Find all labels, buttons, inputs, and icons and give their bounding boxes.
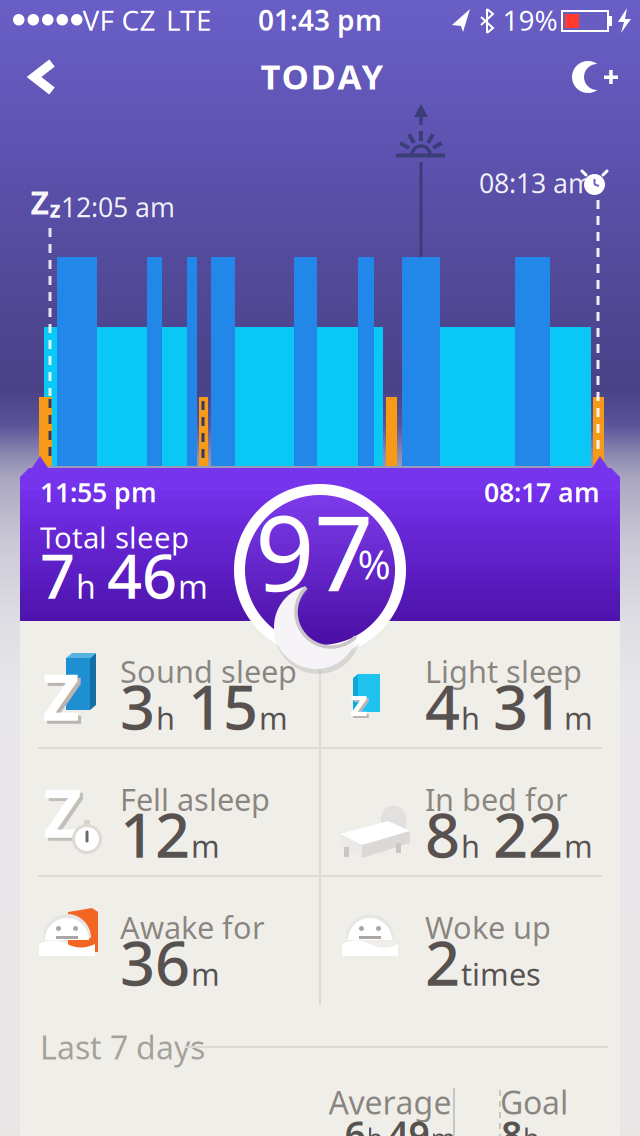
staticText: Fell asleep [120, 779, 270, 819]
staticText: VF CZ [82, 1, 155, 39]
button[interactable]: Add sleep [566, 55, 622, 99]
staticText: m [259, 697, 288, 738]
staticText: 31 [493, 665, 563, 747]
staticText: 11:55 pm [40, 474, 157, 510]
staticText: z [352, 680, 370, 728]
staticText: 08:13 am [479, 165, 593, 201]
staticText: Goal [500, 1081, 568, 1123]
staticText: Average [328, 1081, 451, 1123]
staticText: h [156, 697, 175, 738]
staticText: 49 [387, 1109, 429, 1136]
staticText: times [461, 953, 541, 994]
staticText: 8 [425, 793, 460, 875]
staticText: 19% [502, 1, 557, 39]
staticText: z [49, 194, 60, 224]
staticText: h [461, 825, 480, 866]
staticText: 2 [425, 921, 460, 1003]
staticText: Z [42, 653, 79, 738]
staticText: 22 [493, 793, 563, 875]
staticText: 97 [255, 482, 373, 620]
staticText: 46 [107, 534, 177, 616]
staticText: m [564, 697, 593, 738]
staticText: In bed for [425, 779, 568, 819]
staticText: Z [30, 181, 49, 223]
staticText: Z [45, 656, 82, 741]
staticText: 12 [120, 793, 190, 875]
staticText: 6 [344, 1109, 365, 1136]
staticText: Z [43, 768, 82, 856]
staticText: 15 [188, 665, 258, 747]
button[interactable]: Back [22, 55, 66, 99]
staticText: 8 [501, 1109, 522, 1136]
staticText: 4 [425, 665, 460, 747]
staticText: Awake for [120, 907, 265, 947]
staticText: h [76, 565, 96, 608]
staticText: 7 [40, 534, 75, 616]
staticText: Light sleep [425, 651, 582, 691]
staticText: h [523, 1120, 539, 1136]
staticText: m [564, 825, 593, 866]
staticText: Z [46, 771, 85, 859]
staticText: z [350, 678, 368, 726]
staticText: Woke up [425, 907, 551, 947]
staticText: 08:17 am [484, 474, 600, 510]
staticText: m [178, 565, 208, 608]
staticText: 36 [120, 921, 190, 1003]
staticText: Last 7 days [40, 1026, 205, 1068]
staticText: m [191, 953, 220, 994]
staticText: TODAY [260, 53, 383, 99]
staticText: % [357, 537, 390, 590]
staticText: m [430, 1120, 455, 1136]
staticText: LTE [166, 1, 212, 39]
staticText: m [191, 825, 220, 866]
staticText: Total sleep [40, 517, 189, 556]
staticText: Sound sleep [120, 651, 297, 691]
staticText: 3 [120, 665, 155, 747]
staticText: 01:43 pm [258, 1, 382, 39]
staticText: h [366, 1120, 382, 1136]
staticText: h [461, 697, 480, 738]
staticText: 12:05 am [61, 189, 175, 225]
